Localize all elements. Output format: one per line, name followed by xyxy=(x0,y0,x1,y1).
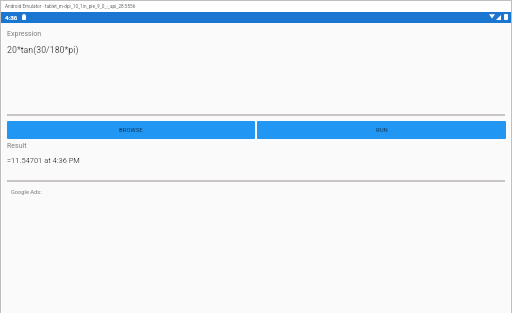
staticText: Result xyxy=(7,142,27,150)
staticText: Expression xyxy=(7,30,42,38)
button[interactable]: BROWSE xyxy=(7,121,255,139)
staticText: BROWSE xyxy=(119,127,143,134)
staticText: Google Ads: xyxy=(11,189,42,196)
staticText: =11.54701 at 4:36 PM xyxy=(7,156,80,165)
staticText: 20*tan(30/180*pi) xyxy=(7,45,79,55)
button[interactable]: RUN xyxy=(257,121,506,139)
staticText: RUN xyxy=(376,127,388,134)
staticText: Android Emulator - tablet_m-dpi_10_1in_p… xyxy=(5,4,136,10)
staticText: 4:36 xyxy=(5,14,18,21)
